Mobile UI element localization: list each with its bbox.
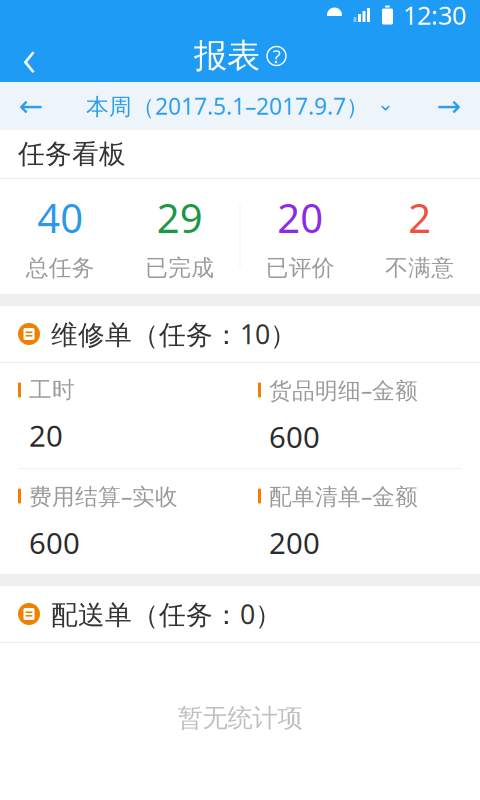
button[interactable]: 本周（2017.5.1–2017.9.7） bbox=[76, 82, 404, 130]
button[interactable]: Back bbox=[0, 30, 58, 82]
staticText: 报表 bbox=[194, 35, 260, 76]
staticText: ⌄ bbox=[377, 92, 394, 115]
staticText: 配单清单–金额 bbox=[269, 481, 418, 511]
staticText: 维修单（任务：10） bbox=[51, 316, 297, 352]
staticText: 任务看板 bbox=[18, 138, 126, 170]
staticText: → bbox=[436, 89, 461, 123]
staticText: 工时 bbox=[29, 376, 75, 404]
staticText: 总任务 bbox=[26, 254, 95, 282]
staticText: 货品明细–金额 bbox=[269, 375, 418, 405]
button[interactable]: Help bbox=[188, 30, 292, 82]
staticText: 200 bbox=[269, 523, 320, 562]
staticText: 20 bbox=[277, 191, 323, 244]
staticText: 暂无统计项 bbox=[177, 702, 302, 733]
staticText: 不满意 bbox=[385, 254, 454, 282]
staticText: 费用结算–实收 bbox=[29, 481, 178, 511]
staticText: ← bbox=[18, 89, 43, 123]
staticText: 已评价 bbox=[266, 254, 335, 282]
staticText: 29 bbox=[157, 191, 203, 244]
button[interactable]: Next period bbox=[418, 82, 480, 130]
staticText: 已完成 bbox=[145, 254, 214, 282]
staticText: 2 bbox=[408, 191, 431, 244]
staticText: 12:30 bbox=[403, 0, 466, 32]
staticText: ? bbox=[272, 44, 280, 68]
button[interactable]: Previous period bbox=[0, 82, 62, 130]
staticText: ‹ bbox=[22, 21, 36, 91]
staticText: 40 bbox=[37, 191, 83, 244]
staticText: 本周（2017.5.1–2017.9.7） bbox=[86, 91, 369, 121]
staticText: 20 bbox=[29, 416, 63, 455]
staticText: 600 bbox=[29, 523, 80, 562]
staticText: 配送单（任务：0） bbox=[51, 596, 282, 632]
staticText: 600 bbox=[269, 417, 320, 456]
